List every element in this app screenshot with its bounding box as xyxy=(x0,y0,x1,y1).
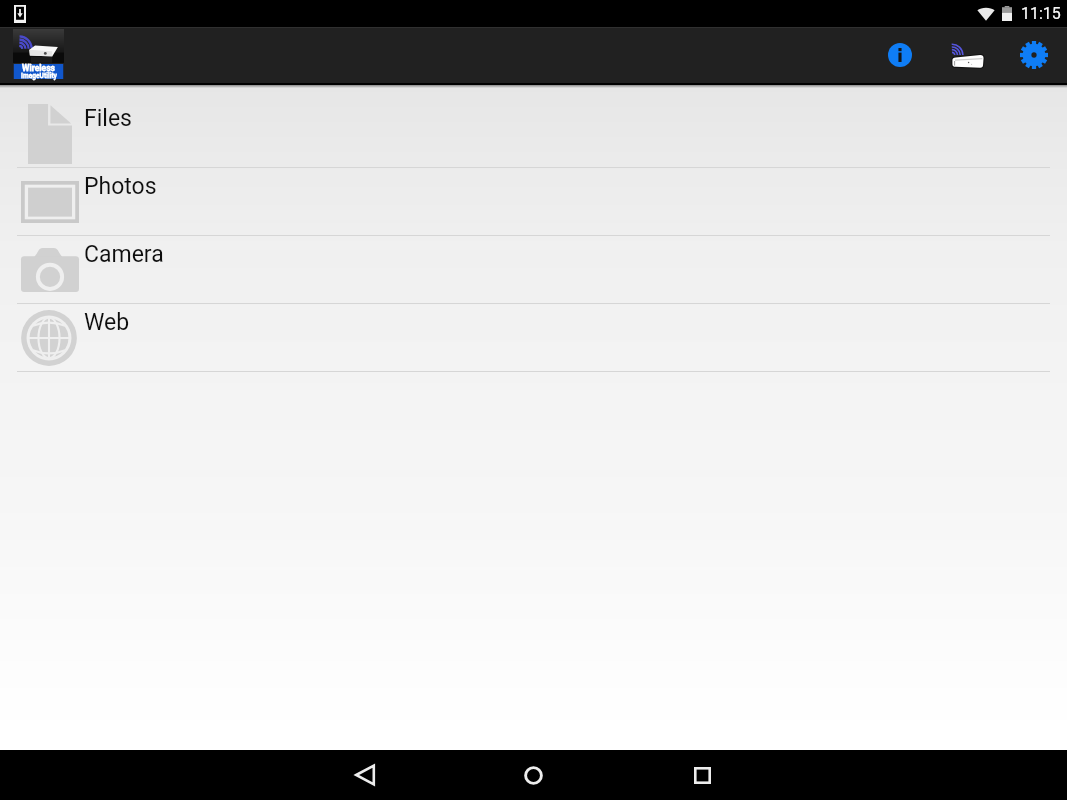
staticText: Camera xyxy=(84,241,164,268)
staticText: Wireless xyxy=(22,63,55,73)
staticText: ImageUtility xyxy=(21,72,57,80)
staticText: 11:15 xyxy=(1021,4,1061,23)
button[interactable]: Web xyxy=(0,304,1067,372)
button[interactable]: Wireless Image Utility xyxy=(13,29,64,79)
staticText: Photos xyxy=(84,173,157,200)
button[interactable]: Back xyxy=(280,750,449,800)
staticText: Web xyxy=(84,309,130,336)
button[interactable]: Files xyxy=(0,100,1067,168)
button[interactable]: Settings xyxy=(1007,28,1061,82)
button[interactable]: Connect projector xyxy=(940,26,994,80)
staticText: Files xyxy=(84,105,132,132)
button[interactable]: Recent apps xyxy=(618,750,787,800)
button[interactable]: Home xyxy=(449,750,618,800)
button[interactable]: Photos xyxy=(0,168,1067,236)
button[interactable]: Information xyxy=(873,28,927,82)
button[interactable]: Camera xyxy=(0,236,1067,304)
